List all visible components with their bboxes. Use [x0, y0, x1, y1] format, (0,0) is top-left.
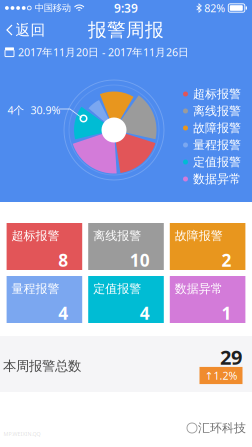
staticText: 10	[130, 248, 150, 271]
staticText: 2	[221, 248, 231, 271]
staticText: 9:39	[114, 0, 138, 16]
staticText: ↑1.2%	[204, 368, 237, 383]
staticText: 82%	[204, 1, 225, 15]
staticText: 离线报警	[193, 104, 241, 118]
staticText: 中国移动	[35, 2, 71, 14]
staticText: 离线报警	[93, 228, 141, 243]
staticText: 量程报警	[12, 281, 60, 296]
button[interactable]: 返回	[0, 16, 52, 44]
staticText: 返回	[15, 21, 45, 39]
staticText: 量程报警	[193, 138, 241, 152]
staticText: 报警周报	[88, 18, 164, 41]
staticText: 1	[221, 301, 231, 324]
staticText: 29	[220, 344, 242, 370]
staticText: 故障报警	[175, 228, 223, 243]
staticText: 超标报警	[193, 87, 241, 101]
staticText: 超标报警	[12, 228, 60, 243]
button[interactable]: 量程报警	[7, 276, 82, 323]
button[interactable]: 故障报警	[170, 223, 245, 270]
button[interactable]: 超标报警	[7, 223, 82, 270]
staticText: 4	[58, 301, 68, 324]
button[interactable]: 定值报警	[88, 276, 164, 323]
staticText: 数据异常	[175, 281, 223, 296]
staticText: 定值报警	[93, 281, 141, 296]
button[interactable]: 离线报警	[88, 223, 164, 270]
staticText: 故障报警	[193, 121, 241, 135]
staticText: 4	[140, 301, 150, 324]
button[interactable]: 数据异常	[170, 276, 245, 323]
staticText: 汇环科技	[198, 421, 246, 435]
staticText: 数据异常	[193, 172, 241, 186]
staticText: 4个 30.9%	[7, 103, 60, 117]
staticText: 2017年11月20日 - 2017年11月26日	[18, 45, 189, 59]
staticText: 8	[58, 248, 68, 271]
staticText: 本周报警总数	[3, 358, 81, 374]
staticText: 定值报警	[193, 155, 241, 169]
staticText: MP.WEIXIN.QQ	[3, 430, 40, 438]
